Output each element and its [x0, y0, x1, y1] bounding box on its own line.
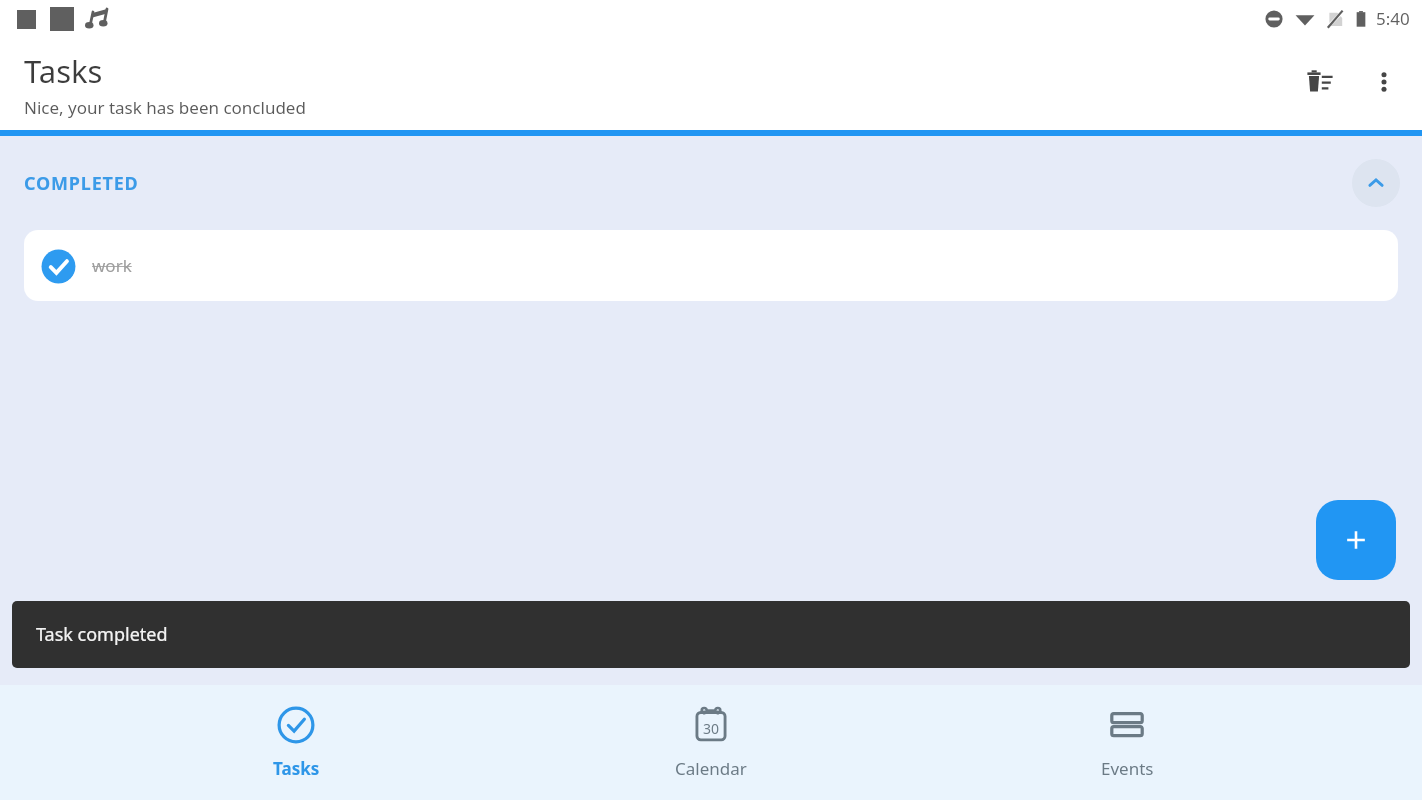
- button[interactable]: Mark task incomplete: [24, 230, 1398, 301]
- staticText: Task completed: [36, 622, 168, 647]
- button[interactable]: Events: [1007, 698, 1247, 788]
- staticText: Events: [1101, 757, 1154, 780]
- button[interactable]: Mark task incomplete: [40, 248, 76, 284]
- staticText: Tasks: [24, 50, 103, 92]
- button[interactable]: Collapse completed section: [1352, 159, 1400, 207]
- staticText: 30: [703, 719, 720, 738]
- button[interactable]: Tasks: [176, 698, 416, 788]
- staticText: work: [92, 254, 132, 277]
- button[interactable]: Task completed: [12, 601, 1410, 668]
- button[interactable]: 30: [591, 698, 831, 788]
- button[interactable]: More options: [1360, 58, 1408, 106]
- staticText: Tasks: [273, 757, 320, 780]
- staticText: COMPLETED: [24, 171, 139, 196]
- staticText: 5:40: [1376, 7, 1410, 30]
- button[interactable]: Add task: [1316, 500, 1396, 580]
- staticText: Nice, your task has been concluded: [24, 96, 306, 119]
- staticText: Calendar: [675, 757, 747, 780]
- button[interactable]: Delete completed tasks: [1296, 58, 1344, 106]
